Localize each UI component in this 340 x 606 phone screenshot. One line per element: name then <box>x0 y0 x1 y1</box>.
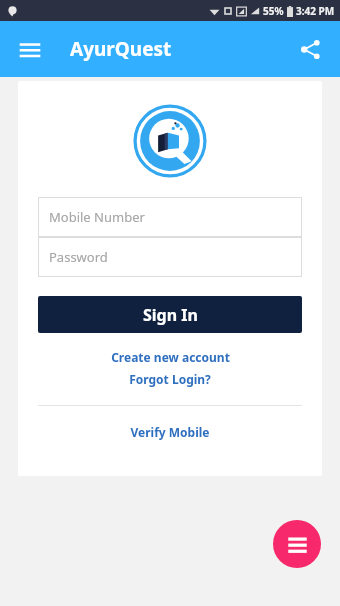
button[interactable]: Sign In <box>38 296 302 333</box>
button[interactable]: Open navigation menu <box>8 27 52 71</box>
staticText: 55% <box>263 4 284 18</box>
button[interactable]: Share <box>288 27 332 71</box>
button[interactable]: Forgot Login? <box>18 371 322 387</box>
button[interactable]: Password <box>38 237 302 277</box>
staticText: Sign In <box>143 304 198 326</box>
staticText: Forgot Login? <box>129 371 211 387</box>
staticText: AyurQuest <box>70 36 172 62</box>
button[interactable]: Menu <box>273 520 321 568</box>
staticText: Mobile Number <box>49 208 145 226</box>
staticText: Password <box>49 248 108 266</box>
staticText: Verify Mobile <box>130 424 210 440</box>
staticText: 3:42 PM <box>296 4 335 18</box>
button[interactable]: Verify Mobile <box>18 424 322 440</box>
button[interactable]: Mobile Number <box>38 197 302 237</box>
button[interactable]: Create new account <box>18 349 322 365</box>
staticText: Create new account <box>111 349 230 365</box>
